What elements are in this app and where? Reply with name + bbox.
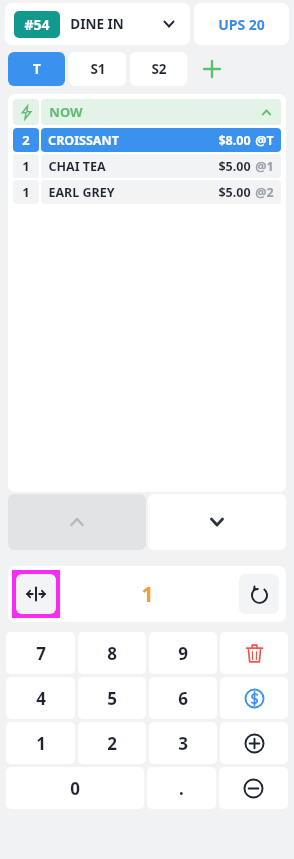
button[interactable]: T: [8, 52, 65, 86]
staticText: DINE IN: [70, 15, 124, 33]
staticText: T: [33, 60, 41, 78]
staticText: 1: [141, 580, 154, 609]
staticText: NOW: [49, 103, 83, 121]
staticText: #54: [24, 15, 50, 34]
staticText: 6: [178, 687, 188, 710]
button[interactable]: 3: [149, 722, 217, 764]
button[interactable]: 1: [13, 180, 281, 204]
button[interactable]: 6: [149, 677, 217, 719]
staticText: S1: [90, 60, 106, 78]
button[interactable]: Increase: [220, 722, 288, 764]
staticText: 3: [178, 732, 188, 755]
button[interactable]: Scroll down: [148, 494, 286, 550]
staticText: 8: [107, 642, 117, 665]
button[interactable]: #54: [5, 3, 190, 45]
button[interactable]: Cash: [220, 677, 288, 719]
staticText: UPS 20: [218, 15, 265, 34]
button[interactable]: 1: [13, 154, 281, 178]
staticText: EARL GREY: [48, 184, 115, 201]
button[interactable]: S2: [130, 52, 187, 86]
button[interactable]: Delete: [220, 632, 288, 674]
staticText: 1: [22, 183, 30, 201]
button[interactable]: Add tab: [195, 52, 229, 86]
button[interactable]: .: [147, 767, 216, 809]
button[interactable]: 8: [78, 632, 146, 674]
button[interactable]: Split quantity: [16, 574, 56, 614]
button[interactable]: 1: [6, 722, 75, 764]
button[interactable]: 4: [6, 677, 75, 719]
staticText: .: [179, 777, 184, 800]
staticText: 1: [36, 732, 46, 755]
staticText: @T: [255, 132, 274, 149]
button[interactable]: Decrease: [219, 767, 288, 809]
staticText: 7: [36, 642, 46, 665]
staticText: 9: [178, 642, 188, 665]
staticText: $8.00: [218, 132, 251, 149]
button[interactable]: 9: [149, 632, 217, 674]
staticText: S2: [151, 60, 167, 78]
button[interactable]: 7: [6, 632, 75, 674]
button[interactable]: UPS 20: [194, 3, 289, 45]
staticText: CHAI TEA: [48, 158, 106, 175]
button[interactable]: Scroll up: [8, 494, 146, 550]
staticText: 5: [107, 687, 117, 710]
button[interactable]: 0: [6, 767, 144, 809]
staticText: $5.00: [218, 158, 251, 175]
button[interactable]: NOW: [13, 99, 281, 125]
button[interactable]: Reset: [239, 574, 279, 614]
button[interactable]: 2: [78, 722, 146, 764]
staticText: 4: [36, 687, 46, 710]
staticText: @1: [255, 158, 274, 175]
staticText: $5.00: [218, 184, 251, 201]
staticText: @2: [255, 184, 274, 201]
button[interactable]: S1: [69, 52, 126, 86]
button[interactable]: 2: [13, 128, 281, 152]
staticText: CROISSANT: [48, 132, 119, 149]
button[interactable]: 5: [78, 677, 146, 719]
staticText: 0: [70, 777, 80, 800]
staticText: 1: [22, 157, 30, 175]
staticText: 2: [107, 732, 117, 755]
staticText: 2: [22, 131, 30, 149]
